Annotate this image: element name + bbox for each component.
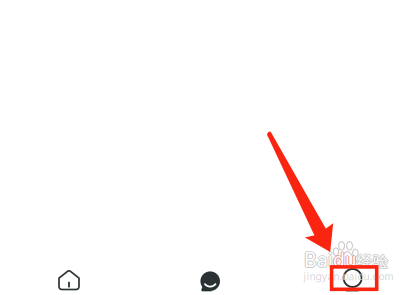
- staticText: 经验: [357, 252, 389, 272]
- staticText: jingyan.baidu.com: [304, 270, 394, 283]
- staticText: du: [333, 249, 356, 273]
- staticText: 经验: [356, 252, 388, 272]
- staticText: du: [333, 247, 356, 271]
- staticText: du: [333, 248, 356, 272]
- staticText: Bai: [303, 248, 332, 272]
- staticText: 经验: [357, 253, 389, 273]
- staticText: Bai: [304, 247, 333, 271]
- staticText: Bai: [304, 249, 333, 273]
- staticText: du: [334, 248, 357, 272]
- staticText: 经验: [357, 251, 389, 271]
- button[interactable]: Home: [41, 260, 97, 295]
- staticText: [356, 267, 357, 272]
- staticText: du: [332, 248, 355, 272]
- staticText: Bai: [305, 248, 334, 272]
- staticText: Bai: [304, 248, 333, 272]
- button[interactable]: Profile: [325, 259, 381, 295]
- button[interactable]: Messages: [182, 261, 238, 295]
- staticText: 经验: [358, 252, 390, 272]
